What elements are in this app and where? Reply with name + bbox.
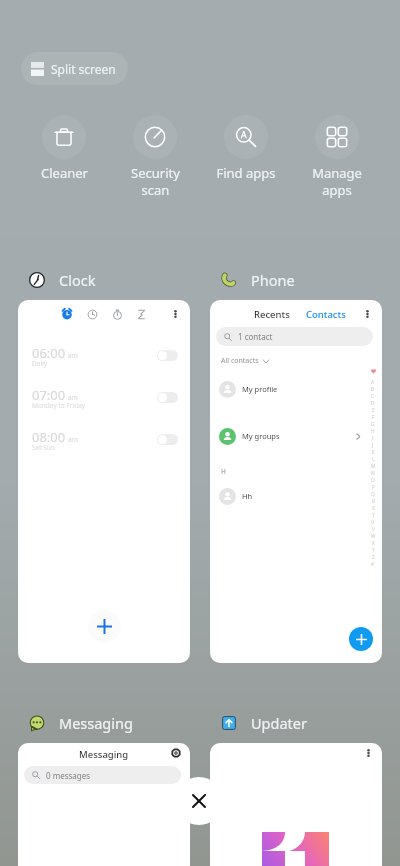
- staticText: Sat Sun: [32, 443, 55, 452]
- button[interactable]: Split screen: [21, 52, 128, 85]
- staticText: Updater: [251, 713, 307, 733]
- button[interactable]: Close all: [175, 777, 223, 825]
- button[interactable]: 1 contact: [216, 327, 373, 346]
- staticText: C: [371, 393, 375, 400]
- staticText: Monday to Friday: [32, 401, 86, 410]
- staticText: Cleaner: [41, 164, 88, 182]
- staticText: 07:00: [32, 386, 66, 404]
- button[interactable]: [210, 743, 382, 866]
- staticText: Daily: [32, 359, 48, 368]
- button[interactable]: My profile: [219, 380, 360, 398]
- staticText: My profile: [242, 384, 278, 394]
- staticText: 08:00: [32, 428, 66, 446]
- button[interactable]: Messaging settings: [167, 744, 184, 761]
- staticText: E: [372, 407, 375, 414]
- staticText: #: [371, 561, 375, 568]
- staticText: am: [68, 351, 78, 360]
- staticText: R: [372, 498, 375, 505]
- staticText: Q: [371, 491, 375, 498]
- staticText: am: [68, 393, 78, 402]
- staticText: 1 contact: [238, 331, 273, 342]
- staticText: 06:00: [32, 344, 66, 362]
- staticText: My groups: [242, 431, 280, 441]
- button[interactable]: Updater: [210, 709, 307, 737]
- staticText: W: [371, 533, 376, 540]
- button[interactable]: Contacts: [306, 308, 346, 321]
- staticText: Y: [372, 547, 375, 554]
- staticText: X: [372, 540, 375, 547]
- button[interactable]: 0 messages: [24, 766, 181, 784]
- button[interactable]: Toggle alarm 08:00: [157, 434, 178, 445]
- staticText: I: [372, 435, 374, 442]
- button[interactable]: All contacts: [221, 356, 269, 366]
- staticText: P: [372, 484, 375, 491]
- staticText: S: [372, 505, 375, 512]
- button[interactable]: Add alarm: [88, 610, 121, 643]
- button[interactable]: Security scan: [110, 115, 200, 199]
- button[interactable]: Clock: [18, 266, 96, 294]
- staticText: U: [371, 519, 375, 526]
- staticText: 0 messages: [46, 770, 91, 781]
- staticText: O: [371, 477, 375, 484]
- button[interactable]: My groups: [219, 427, 360, 445]
- staticText: Find apps: [216, 164, 276, 182]
- button[interactable]: Find apps: [201, 115, 291, 182]
- staticText: F: [372, 414, 375, 421]
- staticText: Hh: [242, 491, 253, 501]
- button[interactable]: Cleaner: [19, 115, 109, 182]
- staticText: Messaging: [59, 713, 133, 733]
- staticText: Phone: [251, 270, 295, 290]
- staticText: N: [371, 470, 375, 477]
- button[interactable]: Toggle alarm 07:00: [157, 392, 178, 403]
- button[interactable]: 06:00: [18, 300, 190, 663]
- staticText: H: [221, 467, 226, 476]
- staticText: M: [371, 463, 376, 470]
- button[interactable]: Messaging: [18, 743, 190, 866]
- button[interactable]: Recents: [210, 300, 382, 663]
- staticText: B: [371, 386, 375, 393]
- staticText: A: [371, 379, 375, 386]
- button[interactable]: Add contact: [349, 627, 373, 651]
- staticText: Security scan: [131, 164, 180, 199]
- button[interactable]: Recents: [254, 308, 290, 321]
- button[interactable]: Messaging: [18, 709, 133, 737]
- staticText: Manage apps: [312, 164, 362, 199]
- staticText: H: [371, 428, 375, 435]
- staticText: All contacts: [221, 356, 259, 366]
- staticText: Clock: [59, 270, 96, 290]
- staticText: K: [372, 449, 375, 456]
- staticText: Z: [372, 554, 375, 561]
- button[interactable]: Phone: [210, 266, 295, 294]
- staticText: D: [371, 400, 375, 407]
- staticText: Messaging: [79, 748, 129, 761]
- button[interactable]: Hh: [219, 487, 360, 505]
- button[interactable]: Toggle alarm 06:00: [157, 350, 178, 361]
- staticText: G: [371, 421, 375, 428]
- staticText: T: [372, 512, 375, 519]
- button[interactable]: Manage apps: [292, 115, 382, 199]
- staticText: am: [68, 435, 78, 444]
- staticText: J: [372, 442, 374, 449]
- staticText: Split screen: [51, 61, 116, 77]
- staticText: V: [372, 526, 375, 533]
- staticText: L: [372, 456, 375, 463]
